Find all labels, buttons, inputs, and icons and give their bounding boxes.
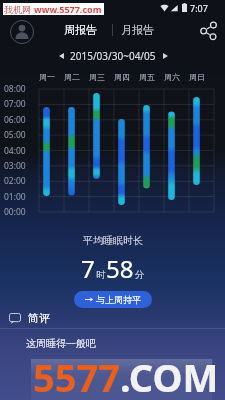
staticText: 02:00 (4, 175, 26, 187)
staticText: 周三 (89, 72, 105, 82)
staticText: 00:00 (4, 206, 26, 218)
staticText: 58 (106, 252, 134, 285)
staticText: 周四 (114, 72, 130, 82)
staticText: 周六 (164, 72, 180, 82)
staticText: 07:00 (4, 98, 26, 110)
staticText: 月报告 (121, 23, 154, 37)
staticText: 简评 (28, 311, 50, 325)
staticText: 7:07 (190, 2, 208, 13)
staticText: 周五 (139, 72, 155, 82)
staticText: 我机网 (4, 4, 31, 15)
staticText: 周二 (64, 72, 80, 82)
button[interactable]: Share (197, 19, 219, 41)
staticText: 03:00 (4, 160, 26, 172)
staticText: 平均睡眠时长 (83, 234, 143, 247)
staticText: 周报告 (64, 23, 97, 37)
staticText: .COM (120, 351, 219, 400)
button[interactable]: Next week (157, 48, 173, 64)
staticText: 2015/03/30~04/05 (70, 49, 156, 63)
button[interactable]: Previous week (53, 48, 69, 64)
staticText: 这周睡得一般吧 (26, 337, 96, 350)
button[interactable]: 周报告 (59, 21, 102, 39)
staticText: 06:00 (4, 114, 26, 126)
staticText: 7 (81, 252, 95, 285)
staticText: 分 (135, 269, 145, 281)
staticText: 04:00 (4, 145, 26, 157)
staticText: 05:00 (4, 129, 26, 141)
staticText: 08:00 (4, 83, 26, 95)
staticText: 周一 (39, 72, 55, 82)
button[interactable]: Profile (8, 18, 35, 45)
staticText: 时 (96, 269, 106, 281)
staticText: 01:00 (4, 191, 26, 203)
staticText: 与上周持平 (96, 294, 141, 305)
button[interactable]: 月报告 (116, 21, 159, 39)
button[interactable]: 与上周持平 (74, 291, 152, 308)
staticText: 周日 (189, 72, 205, 82)
staticText: www.5577.com (34, 3, 102, 15)
staticText: 5577 (33, 351, 120, 400)
